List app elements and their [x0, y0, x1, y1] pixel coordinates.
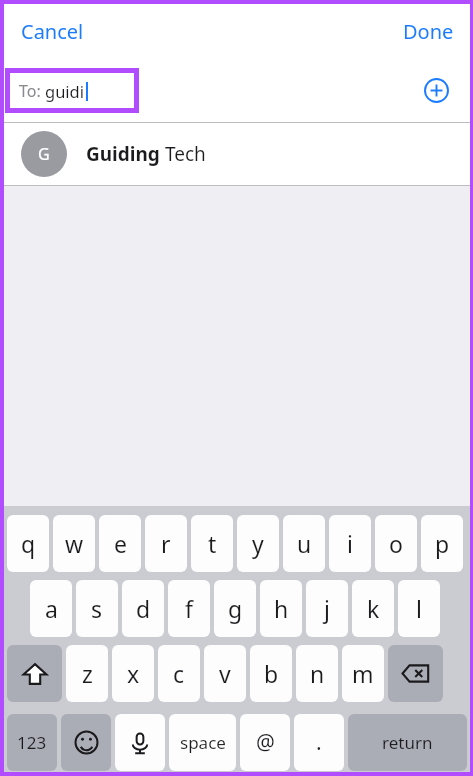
button[interactable]: G: [4, 123, 470, 185]
staticText: d: [136, 593, 151, 624]
button[interactable]: Shift: [7, 645, 62, 702]
button[interactable]: p: [421, 515, 463, 572]
staticText: l: [416, 593, 422, 624]
button[interactable]: v: [204, 645, 246, 702]
staticText: v: [219, 658, 231, 689]
staticText: @: [256, 728, 275, 757]
staticText: return: [382, 731, 433, 754]
staticText: x: [127, 658, 140, 689]
staticText: .: [316, 728, 322, 757]
staticText: k: [367, 593, 380, 624]
button[interactable]: f: [168, 580, 210, 637]
button[interactable]: Emoji: [61, 714, 111, 771]
staticText: j: [324, 593, 330, 624]
button[interactable]: @: [240, 714, 290, 771]
staticText: c: [173, 658, 185, 689]
staticText: G: [38, 143, 50, 165]
button[interactable]: w: [53, 515, 95, 572]
button[interactable]: n: [296, 645, 338, 702]
button[interactable]: a: [30, 580, 72, 637]
button[interactable]: h: [260, 580, 302, 637]
staticText: a: [45, 593, 58, 624]
button[interactable]: c: [158, 645, 200, 702]
staticText: Cancel: [21, 18, 84, 45]
button[interactable]: k: [352, 580, 394, 637]
button[interactable]: 123: [7, 714, 57, 771]
button[interactable]: g: [214, 580, 256, 637]
button[interactable]: Cancel: [4, 10, 96, 53]
button[interactable]: space: [169, 714, 236, 771]
button[interactable]: l: [398, 580, 440, 637]
staticText: b: [264, 658, 279, 689]
button[interactable]: Dictation: [115, 714, 165, 771]
button[interactable]: t: [191, 515, 233, 572]
button[interactable]: s: [76, 580, 118, 637]
button[interactable]: r: [145, 515, 187, 572]
staticText: Guiding: [86, 141, 160, 167]
staticText: g: [228, 593, 243, 624]
button[interactable]: e: [99, 515, 141, 572]
staticText: t: [208, 528, 217, 559]
button[interactable]: Backspace: [388, 645, 443, 702]
button[interactable]: return: [348, 714, 467, 771]
staticText: space: [180, 731, 226, 754]
staticText: 123: [17, 731, 47, 754]
staticText: z: [82, 658, 93, 689]
button[interactable]: Add contact: [416, 70, 456, 110]
button[interactable]: o: [375, 515, 417, 572]
staticText: u: [297, 528, 312, 559]
staticText: i: [347, 528, 353, 559]
button[interactable]: b: [250, 645, 292, 702]
staticText: Done: [403, 18, 454, 45]
staticText: n: [310, 658, 325, 689]
button[interactable]: j: [306, 580, 348, 637]
staticText: To:: [19, 80, 45, 102]
button[interactable]: q: [7, 515, 49, 572]
button[interactable]: .: [294, 714, 344, 771]
staticText: s: [91, 593, 103, 624]
button[interactable]: u: [283, 515, 325, 572]
button[interactable]: z: [66, 645, 108, 702]
staticText: w: [65, 528, 84, 559]
button[interactable]: i: [329, 515, 371, 572]
staticText: m: [352, 658, 374, 689]
staticText: q: [21, 528, 36, 559]
button[interactable]: d: [122, 580, 164, 637]
staticText: Tech: [160, 141, 206, 167]
button[interactable]: x: [112, 645, 154, 702]
button[interactable]: To:: [10, 73, 134, 108]
button[interactable]: y: [237, 515, 279, 572]
staticText: p: [435, 528, 450, 559]
staticText: o: [389, 528, 403, 559]
staticText: y: [252, 528, 264, 559]
staticText: f: [185, 593, 193, 624]
staticText: r: [161, 528, 171, 559]
button[interactable]: m: [342, 645, 384, 702]
staticText: guidi: [45, 80, 85, 102]
staticText: h: [274, 593, 289, 624]
staticText: e: [114, 528, 127, 559]
button[interactable]: Done: [391, 10, 470, 53]
